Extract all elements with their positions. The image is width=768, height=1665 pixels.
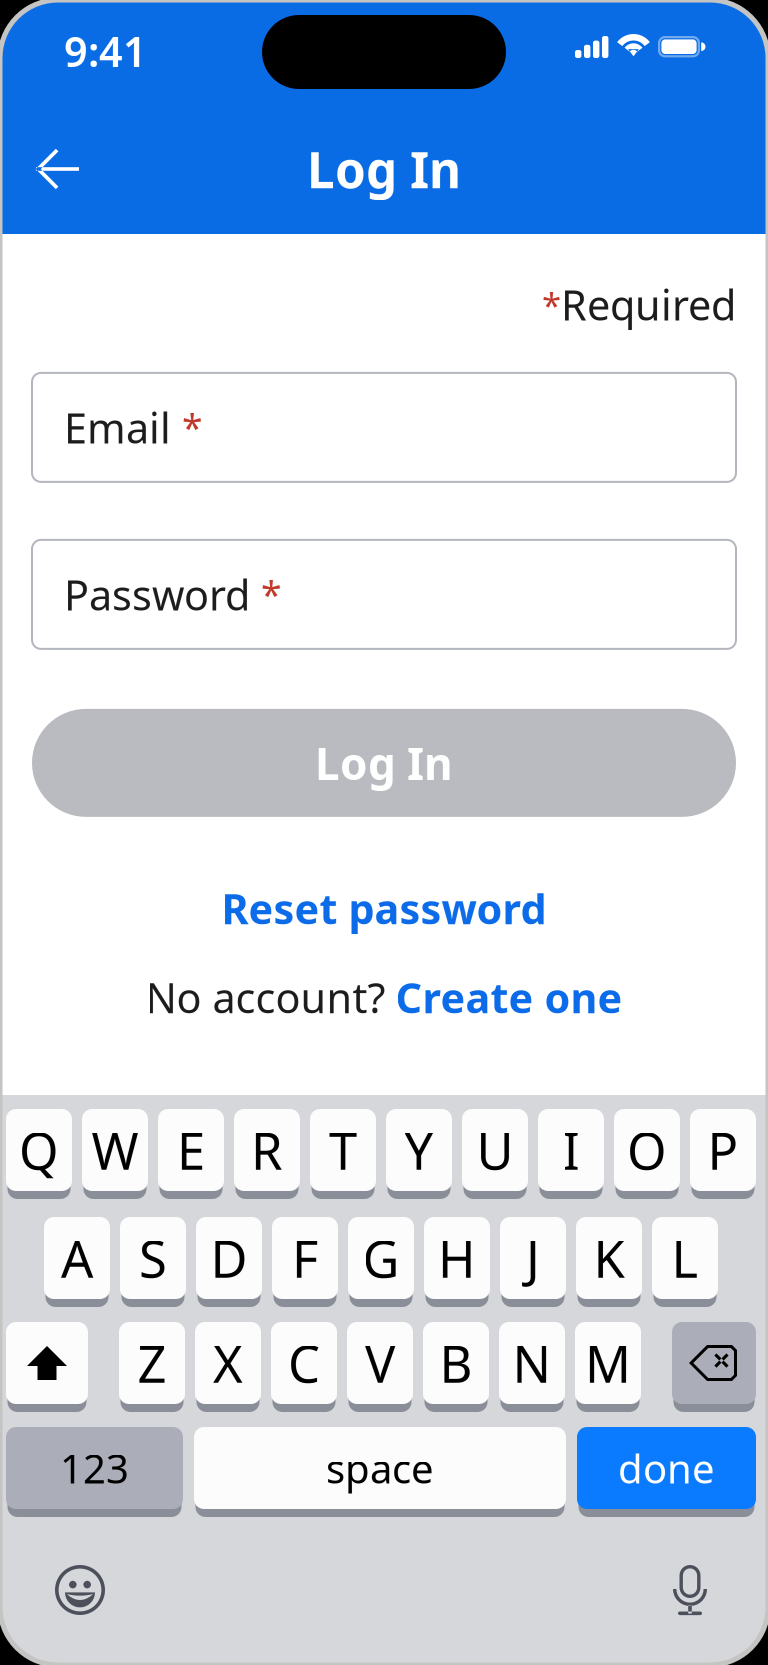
staticText: H: [438, 1224, 476, 1292]
staticText: Y: [404, 1116, 433, 1184]
staticText: W: [91, 1116, 138, 1184]
button[interactable]: G: [348, 1220, 414, 1304]
button[interactable]: Email: [32, 373, 736, 482]
button[interactable]: Back: [0, 131, 101, 207]
staticText: Q: [19, 1116, 59, 1184]
staticText: A: [61, 1224, 93, 1292]
staticText: C: [288, 1329, 320, 1397]
staticText: *: [261, 570, 282, 619]
staticText: S: [139, 1224, 167, 1292]
button[interactable]: A: [44, 1220, 110, 1304]
staticText: Required: [561, 277, 736, 332]
staticText: P: [707, 1116, 738, 1184]
button[interactable]: H: [424, 1220, 490, 1304]
button[interactable]: Dictation: [667, 1561, 713, 1619]
staticText: No account?: [145, 970, 385, 1025]
staticText: F: [292, 1224, 318, 1292]
button[interactable]: Y: [386, 1112, 452, 1196]
staticText: B: [439, 1329, 472, 1397]
button[interactable]: C: [271, 1325, 337, 1409]
staticText: Password: [64, 567, 261, 622]
staticText: R: [251, 1116, 283, 1184]
button[interactable]: Reset password: [221, 869, 546, 948]
button[interactable]: M: [575, 1325, 641, 1409]
staticText: Log In: [315, 734, 453, 792]
button[interactable]: Log In: [32, 709, 736, 817]
staticText: V: [365, 1329, 395, 1397]
staticText: *: [542, 281, 561, 327]
staticText: space: [326, 1441, 434, 1494]
button[interactable]: space: [194, 1430, 566, 1514]
button[interactable]: O: [614, 1112, 680, 1196]
staticText: M: [585, 1329, 631, 1397]
staticText: N: [512, 1329, 551, 1397]
staticText: Log In: [307, 136, 461, 202]
staticText: E: [177, 1116, 205, 1184]
button[interactable]: Create one: [395, 970, 622, 1025]
staticText: Reset password: [221, 881, 546, 936]
button[interactable]: F: [272, 1220, 338, 1304]
button[interactable]: S: [120, 1220, 186, 1304]
staticText: J: [526, 1224, 540, 1292]
staticText: 9:41: [64, 24, 147, 78]
button[interactable]: N: [499, 1325, 565, 1409]
staticText: 123: [60, 1441, 129, 1494]
button[interactable]: 123: [6, 1430, 183, 1514]
staticText: G: [362, 1224, 399, 1292]
button[interactable]: T: [310, 1112, 376, 1196]
staticText: D: [210, 1224, 247, 1292]
staticText: K: [593, 1224, 624, 1292]
button[interactable]: Q: [6, 1112, 72, 1196]
staticText: X: [213, 1329, 243, 1397]
button[interactable]: I: [538, 1112, 604, 1196]
button[interactable]: P: [690, 1112, 756, 1196]
button[interactable]: K: [576, 1220, 642, 1304]
button[interactable]: D: [196, 1220, 262, 1304]
button[interactable]: J: [500, 1220, 566, 1304]
button[interactable]: Emoji keyboard: [53, 1563, 107, 1617]
button[interactable]: Delete: [672, 1325, 756, 1409]
staticText: Create one: [395, 970, 622, 1025]
button[interactable]: U: [462, 1112, 528, 1196]
button[interactable]: B: [423, 1325, 489, 1409]
button[interactable]: W: [82, 1112, 148, 1196]
staticText: T: [329, 1116, 357, 1184]
staticText: O: [627, 1116, 667, 1184]
staticText: done: [618, 1441, 715, 1494]
button[interactable]: Z: [119, 1325, 185, 1409]
button[interactable]: done: [577, 1430, 756, 1514]
button[interactable]: R: [234, 1112, 300, 1196]
button[interactable]: L: [652, 1220, 718, 1304]
staticText: U: [476, 1116, 513, 1184]
staticText: L: [671, 1224, 698, 1292]
button[interactable]: V: [347, 1325, 413, 1409]
staticText: Email: [64, 400, 182, 455]
button[interactable]: Password: [32, 540, 736, 649]
button[interactable]: X: [195, 1325, 261, 1409]
staticText: I: [562, 1116, 579, 1184]
staticText: *: [182, 403, 203, 452]
staticText: Z: [137, 1329, 166, 1397]
button[interactable]: E: [158, 1112, 224, 1196]
button[interactable]: Shift: [6, 1325, 88, 1409]
